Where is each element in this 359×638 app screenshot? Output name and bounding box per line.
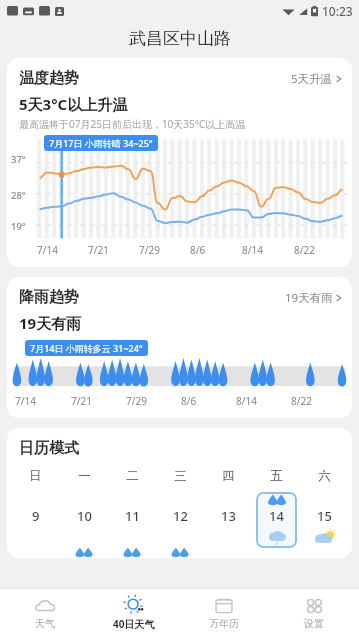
staticText: 7/21 — [88, 243, 109, 257]
staticText: 8/14 — [236, 394, 257, 408]
staticText: 四 — [222, 468, 235, 484]
staticText: 19° — [11, 220, 26, 233]
staticText: 8/6 — [181, 394, 197, 408]
staticText: 7/29 — [126, 394, 147, 408]
staticText: 15 — [317, 507, 332, 525]
staticText: 9 — [32, 507, 40, 525]
staticText: 降雨趋势 — [19, 288, 79, 307]
button[interactable]: 10 — [64, 492, 105, 548]
staticText: 六 — [318, 468, 331, 484]
staticText: 二 — [126, 468, 139, 484]
staticText: 13 — [221, 507, 236, 525]
staticText: 10:23 — [322, 3, 353, 19]
button[interactable]: 降雨趋势 — [7, 277, 352, 309]
staticText: 19天有雨 — [19, 313, 82, 333]
staticText: 19天有雨 — [285, 290, 333, 306]
staticText: 40日天气 — [113, 617, 155, 631]
button[interactable]: 万年历 — [179, 589, 269, 638]
staticText: 最高温将于07月25日前后出现，10天35°C以上高温 — [19, 117, 246, 131]
staticText: 日历模式 — [19, 439, 79, 458]
button[interactable]: 11 — [112, 492, 153, 548]
staticText: 5天升温 — [291, 71, 333, 87]
staticText: 8/6 — [190, 243, 206, 257]
staticText: 8/22 — [291, 394, 312, 408]
button[interactable]: 天气 — [0, 589, 89, 638]
staticText: 8/14 — [242, 243, 263, 257]
staticText: 5天3°C以上升温 — [19, 94, 128, 114]
staticText: 12 — [173, 507, 188, 525]
staticText: 7/21 — [71, 394, 92, 408]
staticText: 万年历 — [209, 617, 239, 630]
staticText: 10 — [77, 507, 92, 525]
staticText: 7/29 — [139, 243, 160, 257]
staticText: 温度趋势 — [19, 69, 79, 88]
staticText: 7月17日 小雨转晴 34~25° — [49, 137, 153, 149]
staticText: 28° — [11, 189, 26, 202]
button[interactable]: 9 — [15, 492, 56, 548]
staticText: 一 — [78, 468, 91, 484]
button[interactable]: 40日天气 — [89, 589, 179, 638]
staticText: 五 — [270, 468, 283, 484]
staticText: 8/22 — [294, 243, 315, 257]
button[interactable]: 温度趋势 — [7, 58, 352, 90]
staticText: 37° — [11, 153, 26, 166]
button[interactable]: 14 — [256, 492, 297, 548]
staticText: 7/14 — [37, 243, 58, 257]
button[interactable]: 设置 — [269, 589, 359, 638]
button[interactable]: 13 — [208, 492, 249, 548]
button[interactable]: 12 — [160, 492, 201, 548]
staticText: 天气 — [35, 617, 55, 630]
staticText: 11 — [125, 507, 140, 525]
staticText: 设置 — [304, 617, 324, 630]
staticText: 武昌区中山路 — [129, 28, 231, 49]
staticText: 7月14日 小雨转多云 31~24° — [30, 342, 143, 354]
staticText: 日 — [29, 468, 42, 484]
staticText: 三 — [174, 468, 187, 484]
staticText: 14 — [269, 507, 284, 525]
staticText: 7/14 — [15, 394, 36, 408]
button[interactable]: 15 — [304, 492, 345, 548]
